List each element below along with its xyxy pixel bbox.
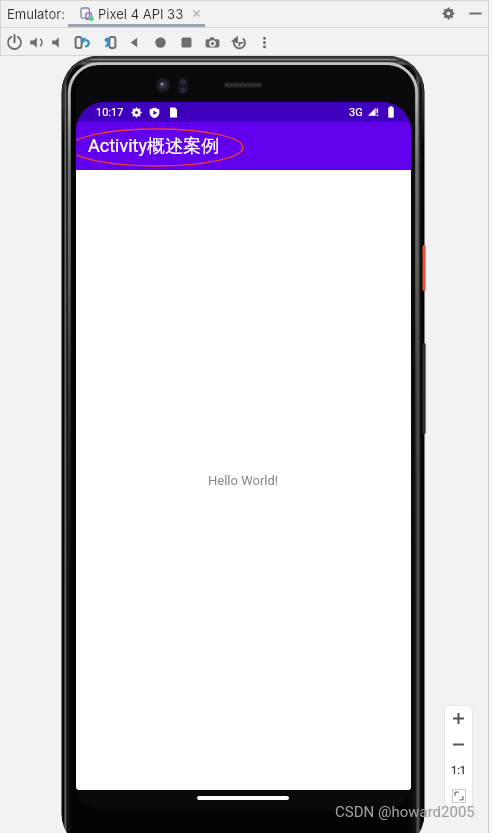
staticText: Emulator: <box>7 6 65 22</box>
button[interactable]: Zoom out <box>444 731 473 757</box>
button[interactable]: Volume up <box>25 31 47 53</box>
button[interactable]: Settings <box>438 3 459 24</box>
button[interactable]: Rotate left <box>71 31 93 53</box>
button[interactable]: Overview <box>175 31 197 53</box>
button[interactable]: 1:1 <box>444 757 473 783</box>
staticText: Activity概述案例 <box>88 135 219 158</box>
button[interactable]: Back <box>123 31 145 53</box>
button[interactable]: More <box>253 31 275 53</box>
button[interactable]: Close tab <box>191 8 202 19</box>
button[interactable]: Minimize <box>465 3 486 24</box>
button[interactable]: Volume down <box>47 31 69 53</box>
staticText: CSDN @howard2005 <box>335 803 475 821</box>
staticText: Pixel 4 API 33 <box>98 6 184 22</box>
button[interactable]: Zoom in <box>444 705 473 731</box>
button[interactable]: Pixel 4 API 33 <box>80 2 202 25</box>
staticText: 10:17 <box>96 106 124 119</box>
staticText: 3G <box>349 106 363 119</box>
button[interactable]: Power <box>3 31 25 53</box>
staticText: Hello World! <box>208 473 279 488</box>
button[interactable]: Screenshot <box>201 31 223 53</box>
button[interactable]: Rotate history <box>227 31 249 53</box>
staticText: 1:1 <box>451 764 467 777</box>
button[interactable]: Home <box>149 31 171 53</box>
button[interactable]: Fit to screen <box>444 783 473 808</box>
button[interactable]: Rotate right <box>97 31 119 53</box>
